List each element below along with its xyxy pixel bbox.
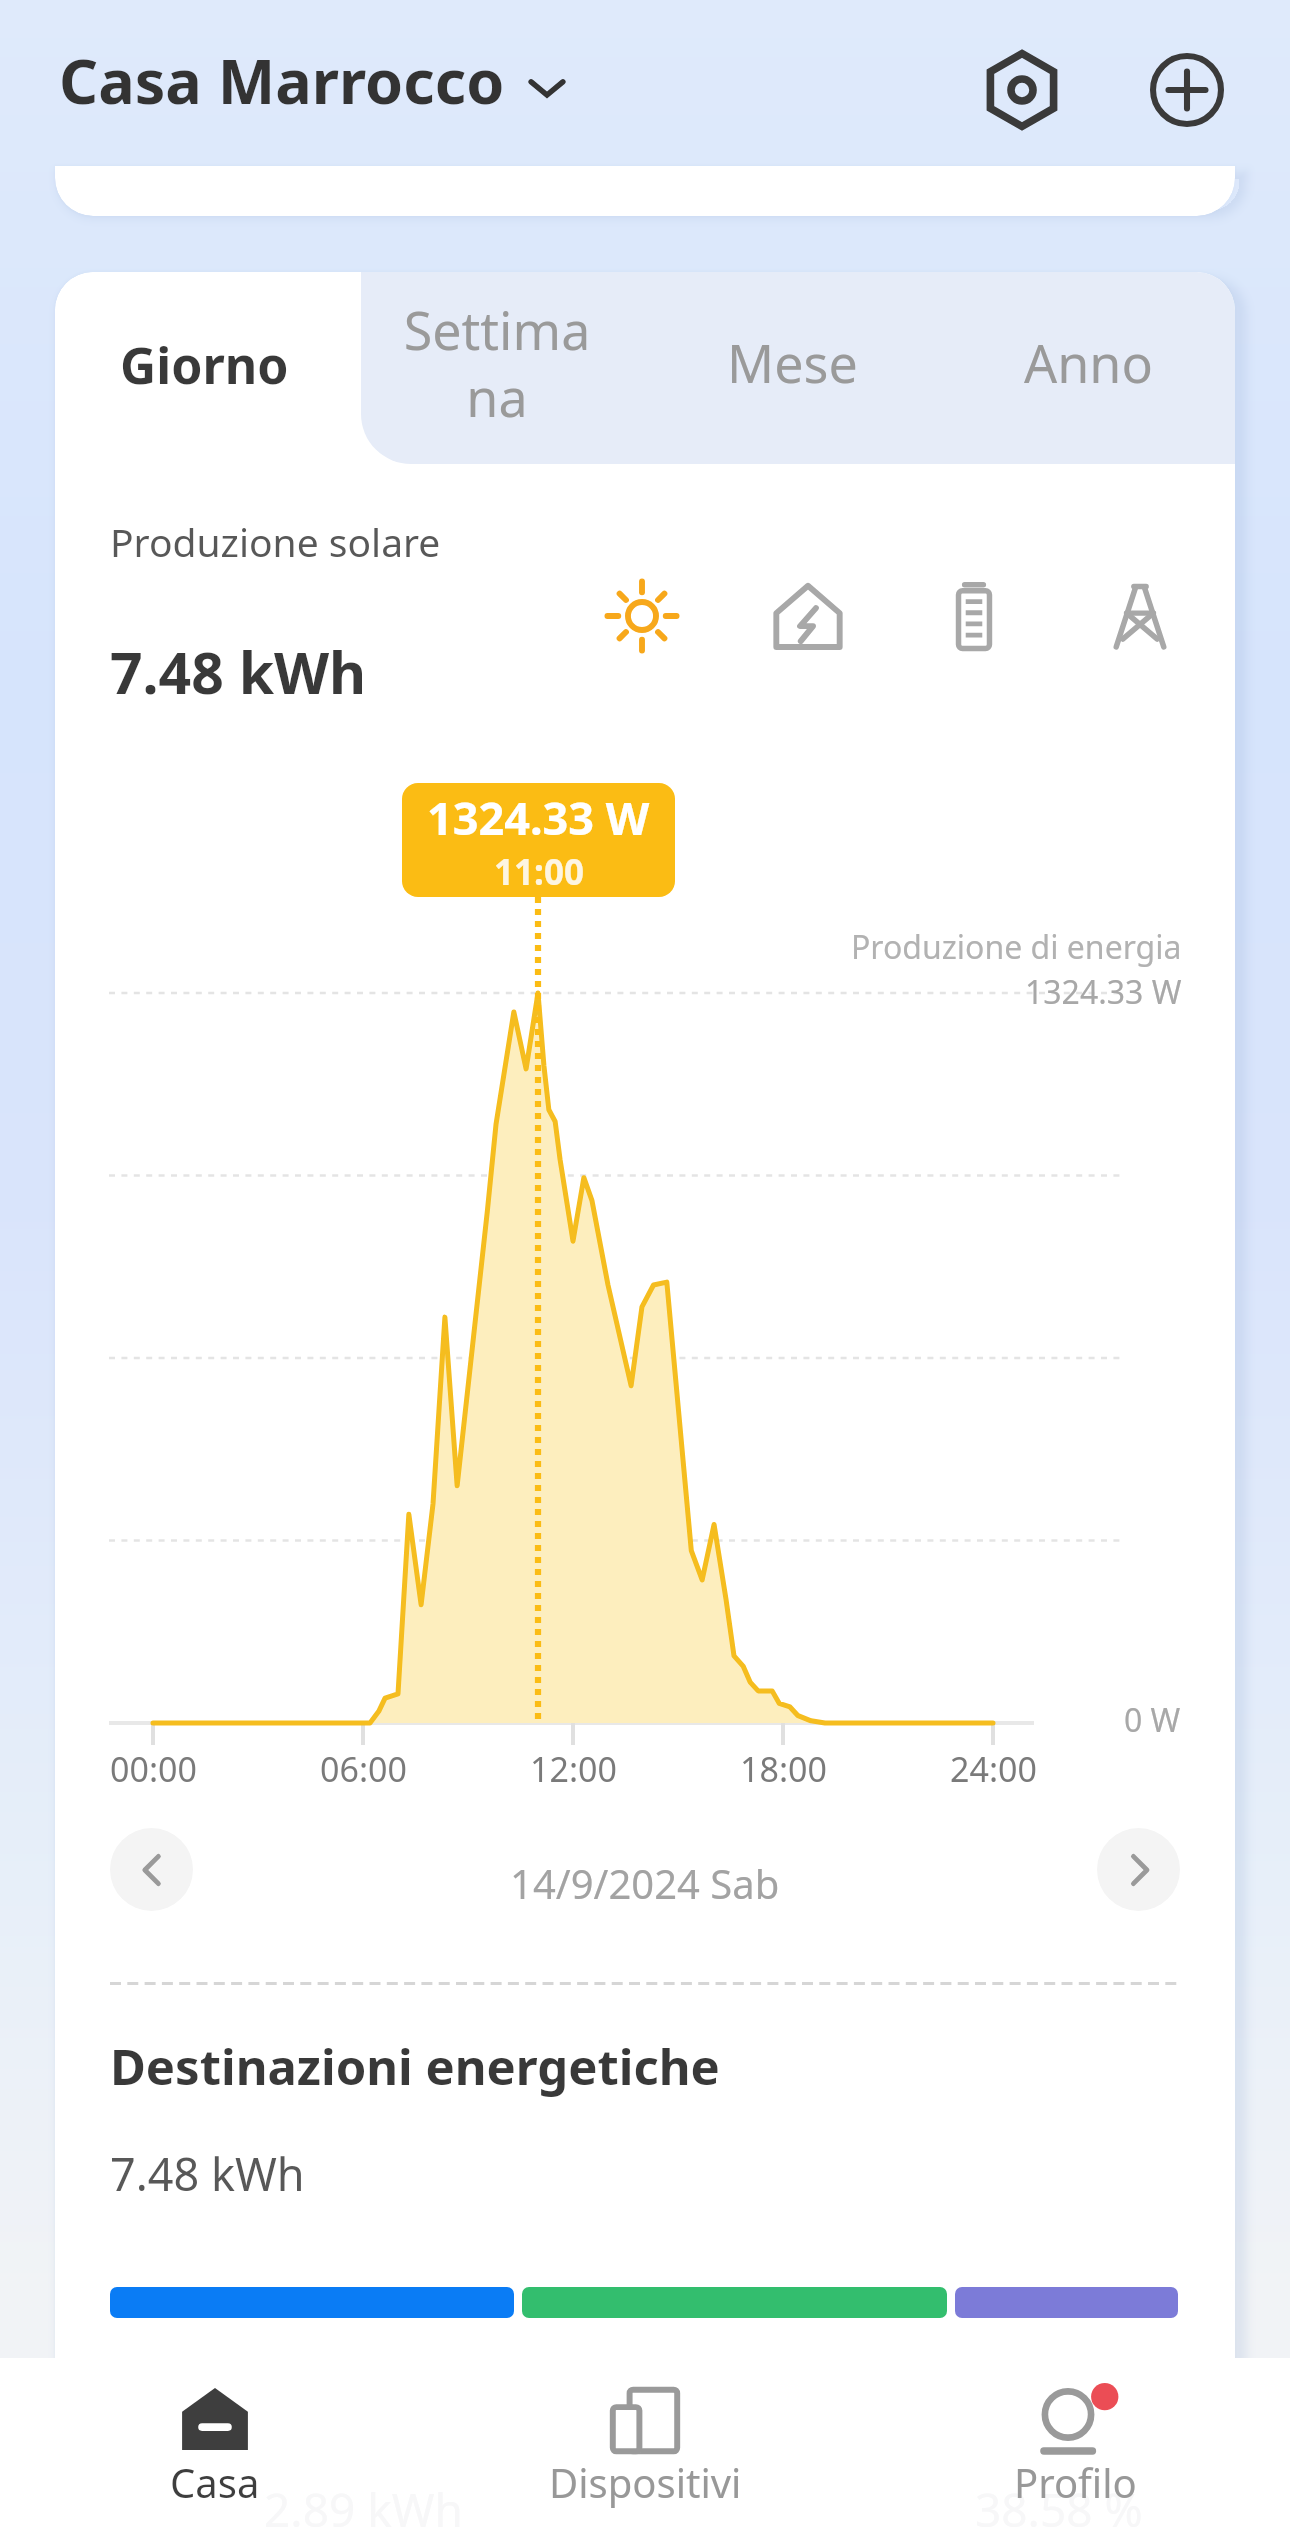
button[interactable]: Previous day [110, 1828, 193, 1911]
staticText: 24:00 [950, 1746, 1037, 1792]
staticText: 18:00 [740, 1746, 827, 1792]
staticText: Mese [727, 327, 858, 398]
button[interactable]: Energy split [105, 2282, 1183, 2323]
staticText: 06:00 [320, 1746, 407, 1792]
button[interactable]: Scenes [967, 35, 1077, 145]
button[interactable]: Profilo [860, 2358, 1290, 2548]
button[interactable]: Settimana [377, 272, 617, 464]
staticText: Casa Marrocco [59, 39, 505, 122]
staticText: Anno [1024, 327, 1153, 398]
button[interactable]: Add device [1132, 35, 1242, 145]
button[interactable]: Battery [927, 569, 1021, 663]
staticText: 1324.33 W [1025, 970, 1182, 1014]
staticText: 1324.33 W [427, 787, 650, 848]
staticText: 14/9/2024 Sab [510, 1856, 780, 1910]
staticText: Produzione solare [110, 515, 441, 568]
staticText: 38.58 % [975, 2478, 1143, 2541]
button[interactable]: Solar production [595, 569, 689, 663]
staticText: Profilo [1014, 2455, 1137, 2509]
staticText: Settimana [397, 294, 597, 432]
staticText: 11:00 [494, 848, 584, 896]
button[interactable]: Dispositivi [430, 2358, 860, 2548]
staticText: 7.48 kWh [110, 633, 367, 711]
staticText: 12:00 [530, 1746, 617, 1792]
button[interactable]: Anno [968, 272, 1208, 464]
staticText: 00:00 [110, 1746, 197, 1792]
button[interactable]: Next day [1097, 1828, 1180, 1911]
button[interactable]: Casa [0, 2358, 430, 2548]
button[interactable]: Home consumption [761, 569, 855, 663]
staticText: 0 W [1124, 1698, 1181, 1742]
staticText: Giorno [120, 331, 289, 399]
button[interactable]: Giorno [55, 272, 415, 464]
button[interactable]: Casa Marrocco [41, 25, 587, 136]
button[interactable]: Grid [1093, 569, 1187, 663]
staticText: Destinazioni energetiche [110, 2033, 720, 2100]
button[interactable]: Mese [672, 272, 912, 464]
staticText: Casa [170, 2455, 260, 2509]
button[interactable]: 1324.33 W [402, 783, 675, 897]
staticText: Dispositivi [549, 2455, 742, 2509]
staticText: 7.48 kWh [110, 2143, 305, 2204]
staticText: Produzione di energia [851, 925, 1182, 969]
